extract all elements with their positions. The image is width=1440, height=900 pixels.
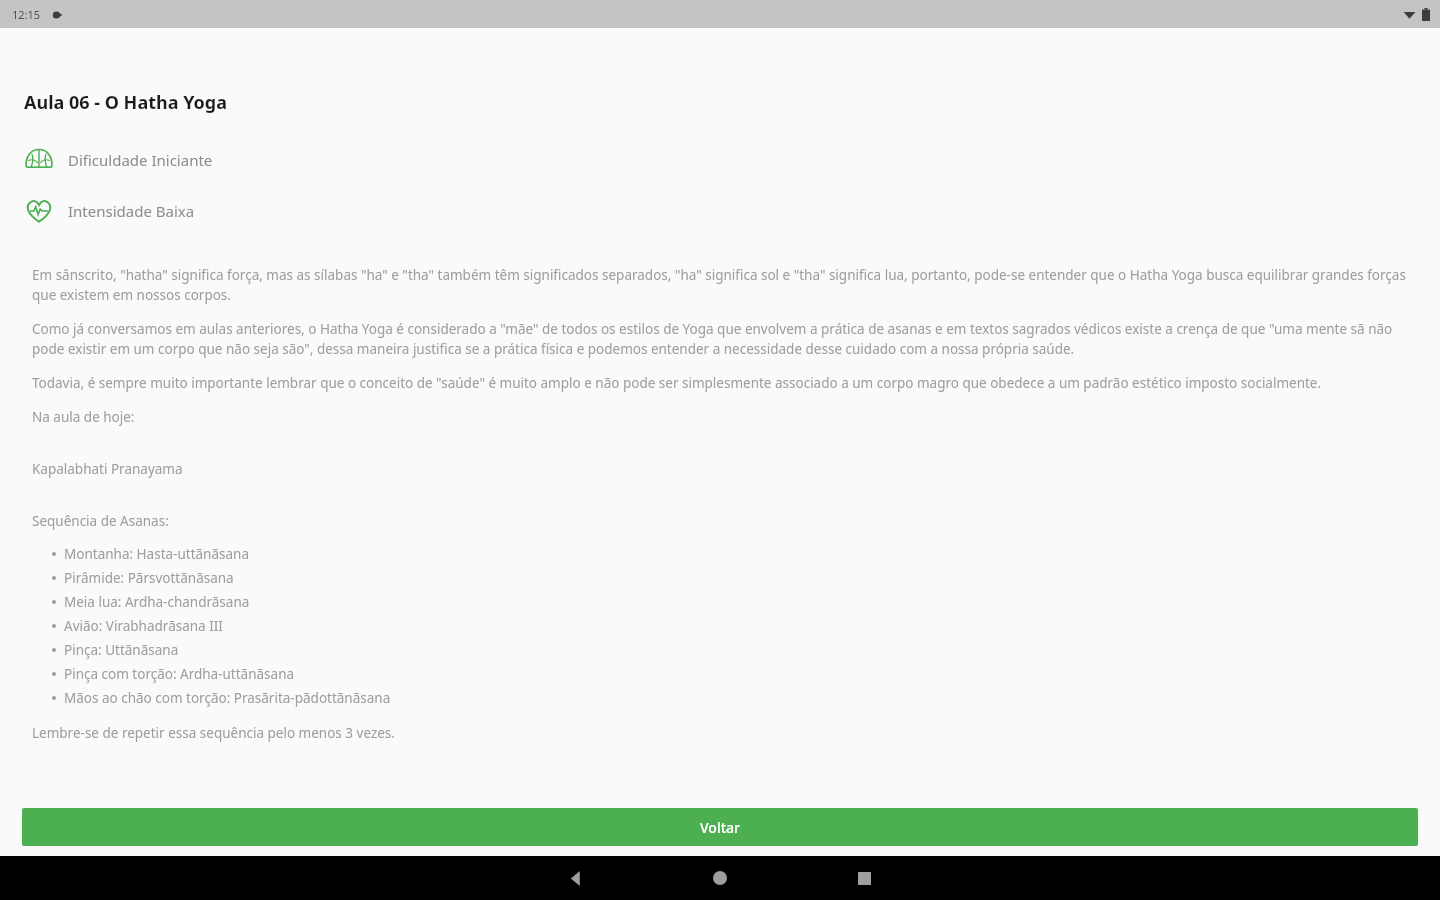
- button[interactable]: Voltar: [22, 808, 1418, 846]
- staticText: Montanha: Hasta-uttãnãsana: [64, 545, 249, 563]
- staticText: Sequência de Asanas:: [32, 512, 169, 530]
- other: Dificuldade: [24, 145, 54, 175]
- staticText: Mãos ao chão com torção: Prasãrita-pãdot…: [64, 689, 391, 707]
- staticText: Kapalabhati Pranayama: [32, 460, 183, 478]
- button[interactable]: Recent apps: [840, 856, 888, 900]
- staticText: Lembre-se de repetir essa sequência pelo…: [32, 724, 395, 742]
- staticText: Todavia, é sempre muito importante lembr…: [32, 374, 1322, 392]
- button[interactable]: Home: [696, 856, 744, 900]
- staticText: 12:15: [12, 7, 41, 22]
- staticText: Pirâmide: Pãrsvottãnãsana: [64, 569, 234, 587]
- staticText: Intensidade Baixa: [68, 201, 195, 221]
- staticText: Aula 06 - O Hatha Yoga: [24, 90, 227, 115]
- staticText: Pinça com torção: Ardha-uttãnãsana: [64, 665, 295, 683]
- button[interactable]: Back: [552, 856, 600, 900]
- staticText: Na aula de hoje:: [32, 408, 135, 426]
- staticText: Pinça: Uttãnãsana: [64, 641, 179, 659]
- button[interactable]: Dificuldade: [0, 141, 1440, 179]
- staticText: Em sânscrito, "hatha" significa força, m…: [32, 266, 1410, 304]
- staticText: Meia lua: Ardha-chandrãsana: [64, 593, 250, 611]
- staticText: Avião: Virabhadrãsana III: [64, 617, 223, 635]
- button[interactable]: Intensidade: [0, 192, 1440, 230]
- staticText: Dificuldade Iniciante: [68, 150, 213, 170]
- staticText: Como já conversamos em aulas anteriores,…: [32, 320, 1410, 358]
- other: Intensidade: [24, 196, 54, 226]
- staticText: Voltar: [700, 818, 740, 837]
